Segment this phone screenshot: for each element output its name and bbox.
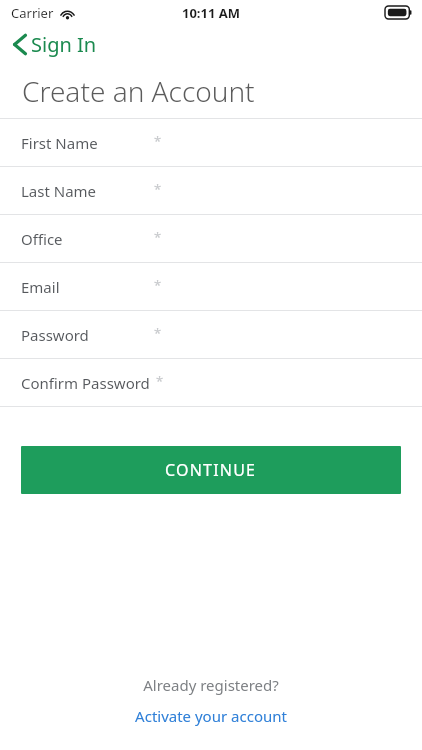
staticText: Password <box>21 325 89 345</box>
staticText: Last Name <box>21 181 97 201</box>
staticText: Create an Account <box>22 72 255 110</box>
staticText: CONTINUE <box>165 459 257 481</box>
staticText: Email <box>21 277 60 297</box>
button[interactable]: Email <box>0 263 422 310</box>
button[interactable]: Last Name <box>0 167 422 214</box>
staticText: * <box>154 180 162 198</box>
button[interactable]: Office <box>0 215 422 262</box>
staticText: * <box>154 228 162 246</box>
button[interactable]: Sign In <box>13 31 97 58</box>
staticText: * <box>156 372 164 390</box>
staticText: Confirm Password <box>21 373 150 393</box>
staticText: First Name <box>21 133 98 153</box>
staticText: Carrier <box>11 4 54 22</box>
staticText: Activate your account <box>135 706 287 726</box>
staticText: * <box>154 324 162 342</box>
button[interactable]: CONTINUE <box>21 446 401 494</box>
staticText: * <box>154 276 162 294</box>
button[interactable]: Password <box>0 311 422 358</box>
staticText: 10:11 AM <box>182 4 241 22</box>
button[interactable]: Confirm Password <box>0 359 422 406</box>
button[interactable]: Activate your account <box>129 704 293 728</box>
button[interactable]: First Name <box>0 119 422 166</box>
staticText: Office <box>21 229 63 249</box>
staticText: Sign In <box>31 31 97 58</box>
staticText: * <box>154 132 162 150</box>
staticText: Already registered? <box>143 675 279 695</box>
